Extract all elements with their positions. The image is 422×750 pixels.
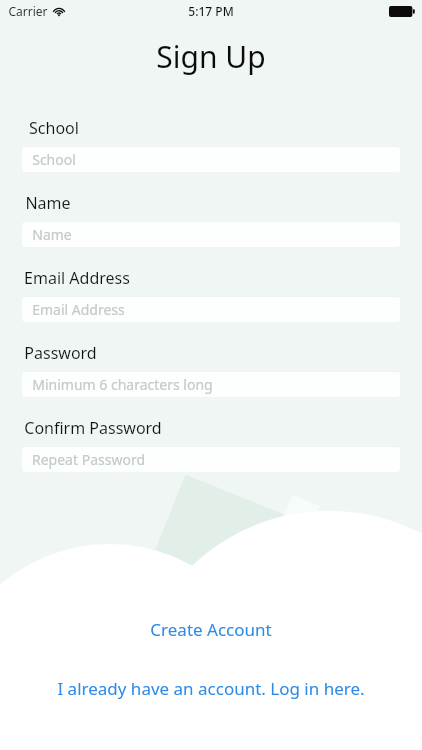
- staticText: Repeat Password: [32, 450, 145, 469]
- staticText: 5:17 PM: [188, 3, 234, 19]
- staticText: Carrier: [8, 3, 48, 19]
- button[interactable]: Minimum 6 characters long: [21, 371, 401, 398]
- staticText: Sign Up: [156, 36, 266, 77]
- staticText: School: [29, 117, 79, 139]
- button[interactable]: Create Account: [0, 608, 422, 651]
- staticText: Create Account: [150, 618, 272, 641]
- button[interactable]: Name: [21, 221, 401, 248]
- staticText: School: [32, 150, 76, 169]
- button[interactable]: Email Address: [21, 296, 401, 323]
- staticText: I already have an account. Log in here.: [57, 677, 365, 700]
- staticText: Email Address: [32, 300, 125, 319]
- staticText: Password: [24, 342, 97, 364]
- staticText: Name: [25, 192, 71, 214]
- button[interactable]: School: [21, 146, 401, 173]
- staticText: Email Address: [24, 267, 130, 289]
- staticText: Confirm Password: [24, 417, 162, 439]
- button[interactable]: I already have an account. Log in here.: [0, 669, 422, 708]
- staticText: Minimum 6 characters long: [32, 375, 213, 394]
- button[interactable]: Repeat Password: [21, 446, 401, 473]
- staticText: Name: [32, 225, 72, 244]
